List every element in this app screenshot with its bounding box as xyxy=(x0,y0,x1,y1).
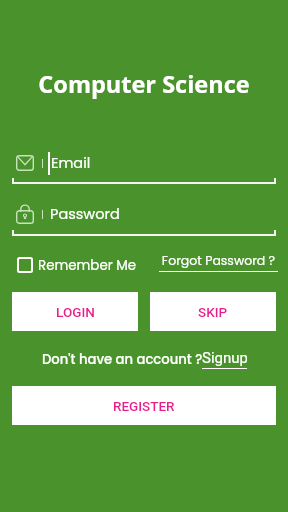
button[interactable]: Forgot Password ? xyxy=(159,252,278,272)
staticText: LOGIN xyxy=(56,304,95,320)
button[interactable]: Remember Me xyxy=(17,254,137,276)
staticText: Remember Me xyxy=(38,256,137,275)
staticText: Don't have an account ? xyxy=(42,350,203,368)
button[interactable]: SKIP xyxy=(150,292,276,331)
other: Email xyxy=(16,155,34,171)
staticText: Computer Science xyxy=(0,68,288,100)
staticText: Password xyxy=(50,204,120,224)
staticText: Forgot Password ? xyxy=(159,252,278,269)
staticText: Signup xyxy=(202,349,247,367)
button[interactable]: LOGIN xyxy=(12,292,138,331)
button[interactable]: Password xyxy=(12,199,276,229)
button[interactable]: Signup xyxy=(202,349,247,369)
button[interactable]: REGISTER xyxy=(12,386,276,425)
button[interactable]: Email xyxy=(12,148,276,178)
other: Password xyxy=(16,204,34,224)
staticText: REGISTER xyxy=(113,398,175,414)
staticText: Email xyxy=(51,153,91,173)
staticText: SKIP xyxy=(198,304,228,320)
